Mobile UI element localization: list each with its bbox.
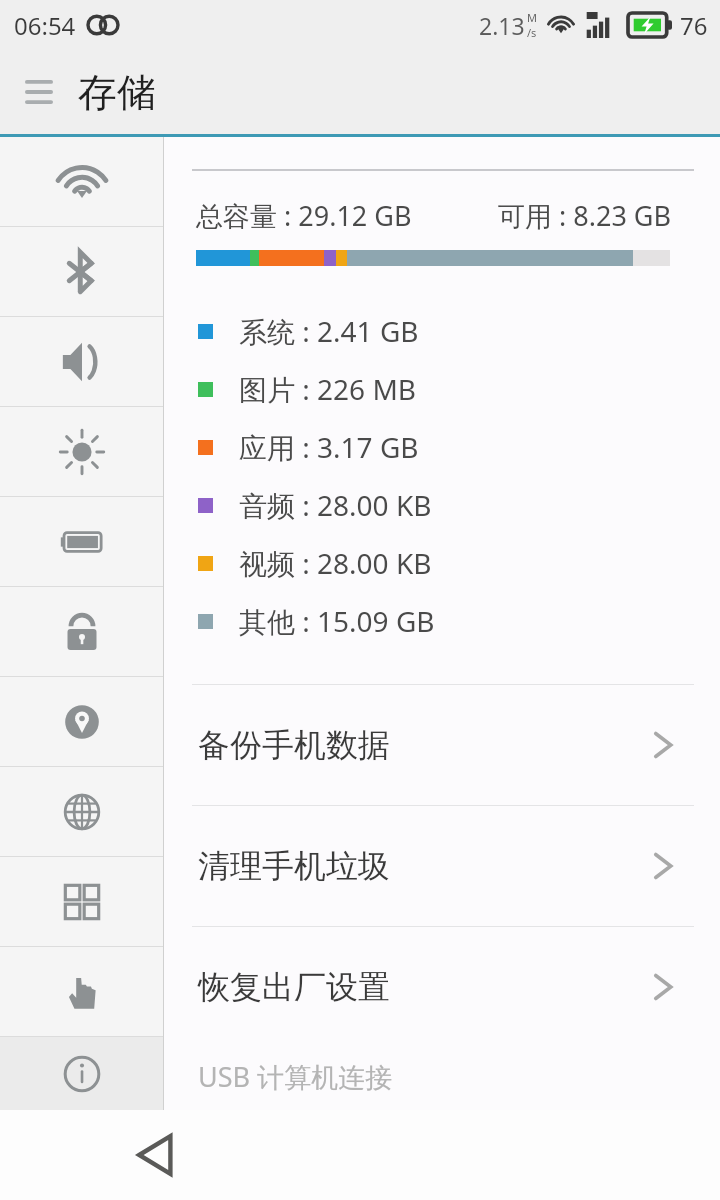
button[interactable]: Back bbox=[112, 1111, 200, 1199]
staticText: 清理手机垃圾 bbox=[198, 846, 390, 886]
staticText: /s bbox=[527, 25, 537, 40]
button[interactable]: Wi-Fi bbox=[0, 137, 164, 226]
staticText: USB 计算机连接 bbox=[198, 1058, 393, 1095]
button[interactable]: Menu bbox=[10, 63, 68, 121]
button[interactable]: Security bbox=[0, 587, 164, 676]
button[interactable]: Network bbox=[0, 767, 164, 856]
staticText: 图片 : 226 MB bbox=[239, 370, 416, 408]
staticText: 总容量 : 29.12 GB bbox=[196, 197, 412, 234]
button[interactable]: 清理手机垃圾 bbox=[164, 806, 720, 926]
staticText: 06:54 bbox=[14, 9, 76, 42]
staticText: 可用 : 8.23 GB bbox=[498, 197, 672, 234]
staticText: 2.13 bbox=[479, 10, 525, 41]
button[interactable]: Sound bbox=[0, 317, 164, 406]
button[interactable]: About phone bbox=[0, 1037, 164, 1110]
staticText: 76 bbox=[680, 9, 708, 42]
button[interactable]: Bluetooth bbox=[0, 227, 164, 316]
button[interactable]: 备份手机数据 bbox=[164, 685, 720, 805]
button[interactable]: Gestures bbox=[0, 947, 164, 1036]
staticText: 存储 bbox=[78, 68, 156, 117]
staticText: 应用 : 3.17 GB bbox=[239, 428, 419, 466]
staticText: 音频 : 28.00 KB bbox=[239, 486, 432, 524]
button[interactable]: Battery bbox=[0, 497, 164, 586]
button[interactable]: Display bbox=[0, 407, 164, 496]
staticText: 恢复出厂设置 bbox=[198, 967, 390, 1007]
staticText: 系统 : 2.41 GB bbox=[239, 312, 419, 350]
staticText: 视频 : 28.00 KB bbox=[239, 544, 432, 582]
staticText: M bbox=[527, 10, 537, 25]
button[interactable]: Location bbox=[0, 677, 164, 766]
staticText: 备份手机数据 bbox=[198, 725, 390, 765]
button[interactable]: Apps bbox=[0, 857, 164, 946]
staticText: 其他 : 15.09 GB bbox=[239, 602, 435, 640]
button[interactable]: 恢复出厂设置 bbox=[164, 927, 720, 1047]
